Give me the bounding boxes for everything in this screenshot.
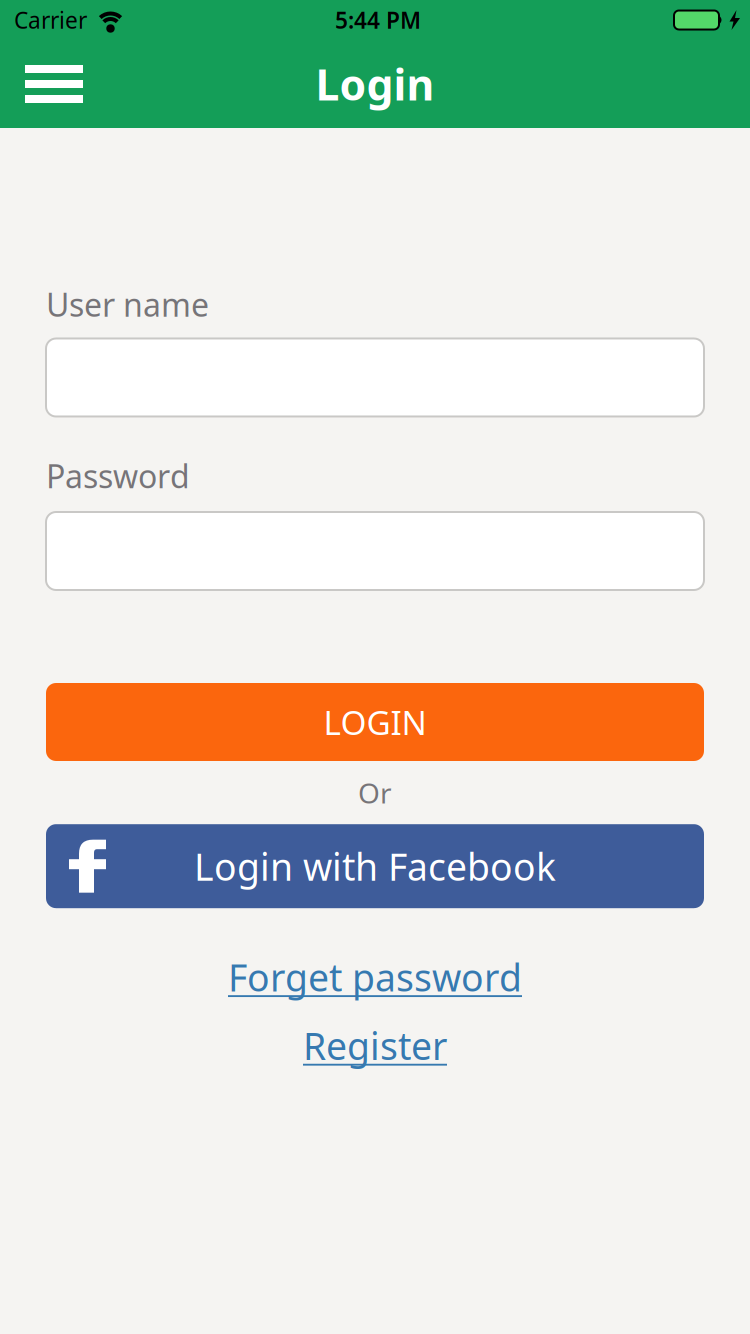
staticText: 5:44 PM (335, 5, 421, 35)
staticText: LOGIN (323, 700, 426, 744)
button[interactable]: Menu (0, 55, 103, 113)
staticText: Carrier (14, 5, 87, 35)
staticText: Register (303, 1021, 447, 1070)
button[interactable]: LOGIN (46, 683, 704, 761)
staticText: User name (46, 283, 209, 325)
staticText: Login with Facebook (194, 841, 556, 891)
button[interactable]: Login with Facebook (46, 824, 704, 908)
staticText: Or (358, 774, 392, 811)
staticText: Login (315, 56, 434, 112)
button[interactable]: Forget password (228, 952, 522, 1002)
staticText: Password (46, 454, 190, 497)
staticText: Forget password (228, 952, 522, 1002)
button[interactable]: Register (303, 1021, 447, 1070)
